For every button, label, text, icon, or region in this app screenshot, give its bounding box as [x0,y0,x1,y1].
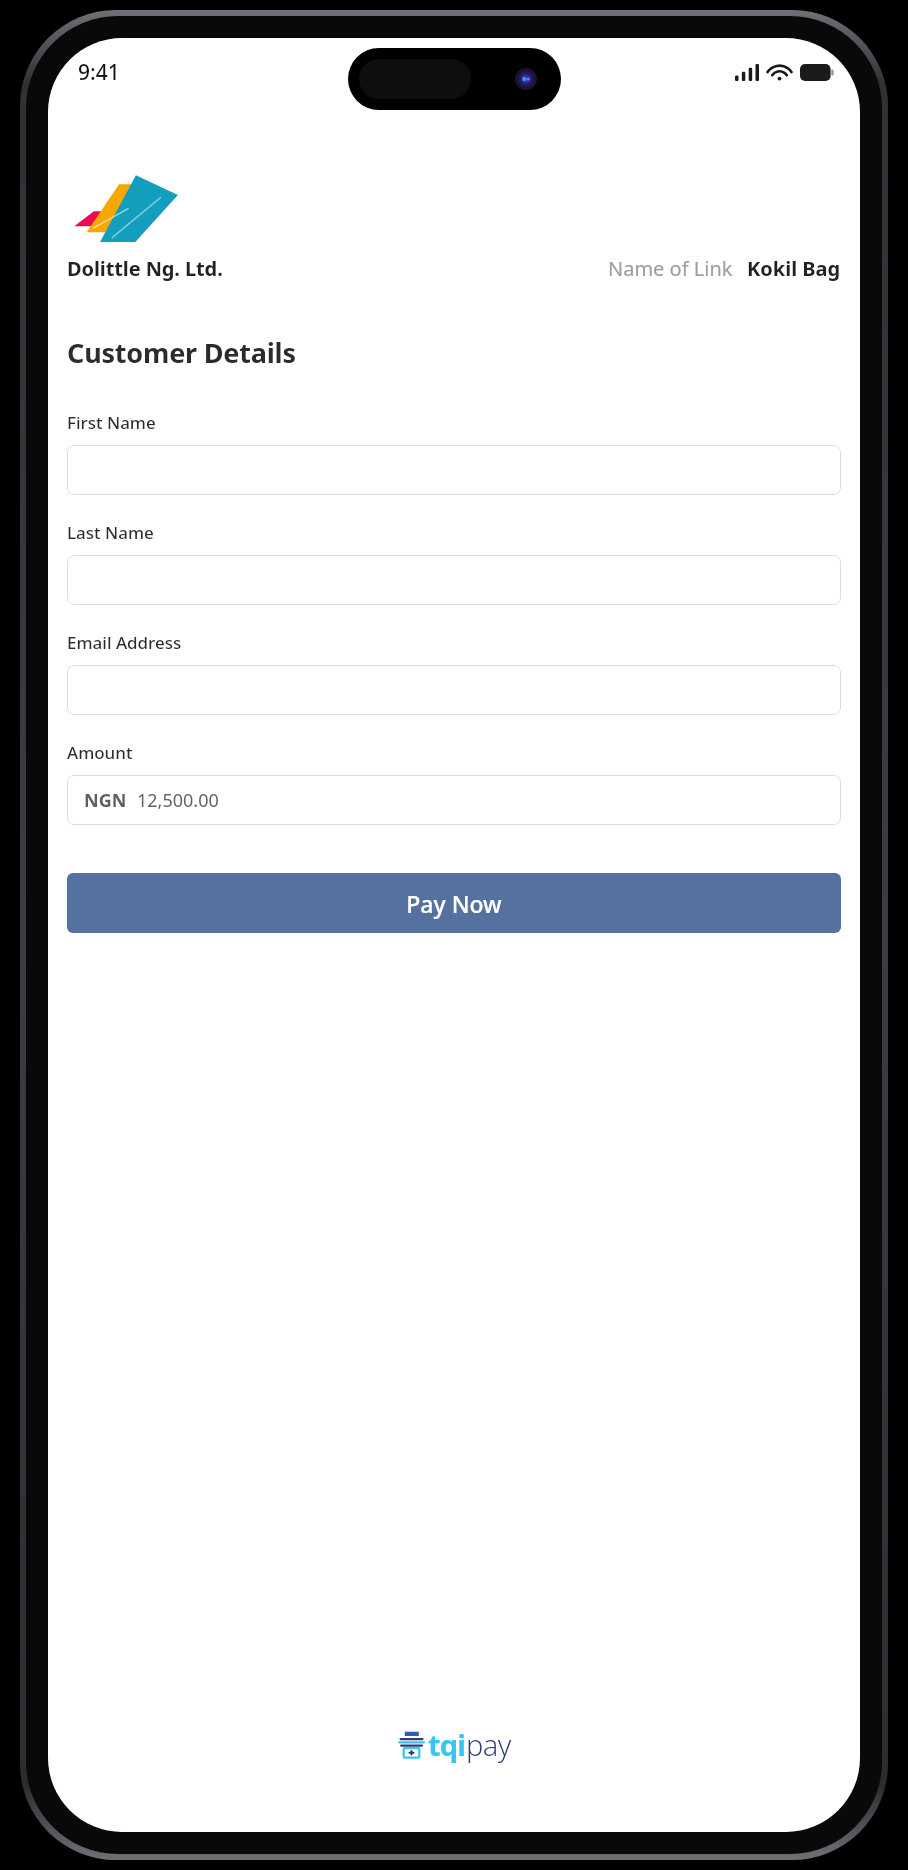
staticText: Dolittle Ng. Ltd. [67,255,223,282]
staticText: 12,500.00 [137,788,219,813]
staticText: Email Address [67,631,182,654]
staticText: pay [466,1725,511,1764]
button[interactable] [67,665,841,715]
staticText: First Name [67,411,156,434]
staticText: Customer Details [67,334,296,371]
staticText: NGN [84,788,127,813]
button[interactable]: Name of Link [608,255,733,282]
staticText: Amount [67,741,133,764]
staticText: Pay Now [406,888,502,919]
button[interactable] [67,555,841,605]
staticText: Last Name [67,521,154,544]
staticText: Kokil Bag [747,255,841,282]
staticText: tqi [428,1725,466,1764]
staticText: Name of Link [608,255,733,282]
staticText: 9:41 [78,58,120,87]
button[interactable] [67,445,841,495]
button[interactable]: Pay Now [67,873,841,933]
button[interactable]: NGN [67,775,841,825]
